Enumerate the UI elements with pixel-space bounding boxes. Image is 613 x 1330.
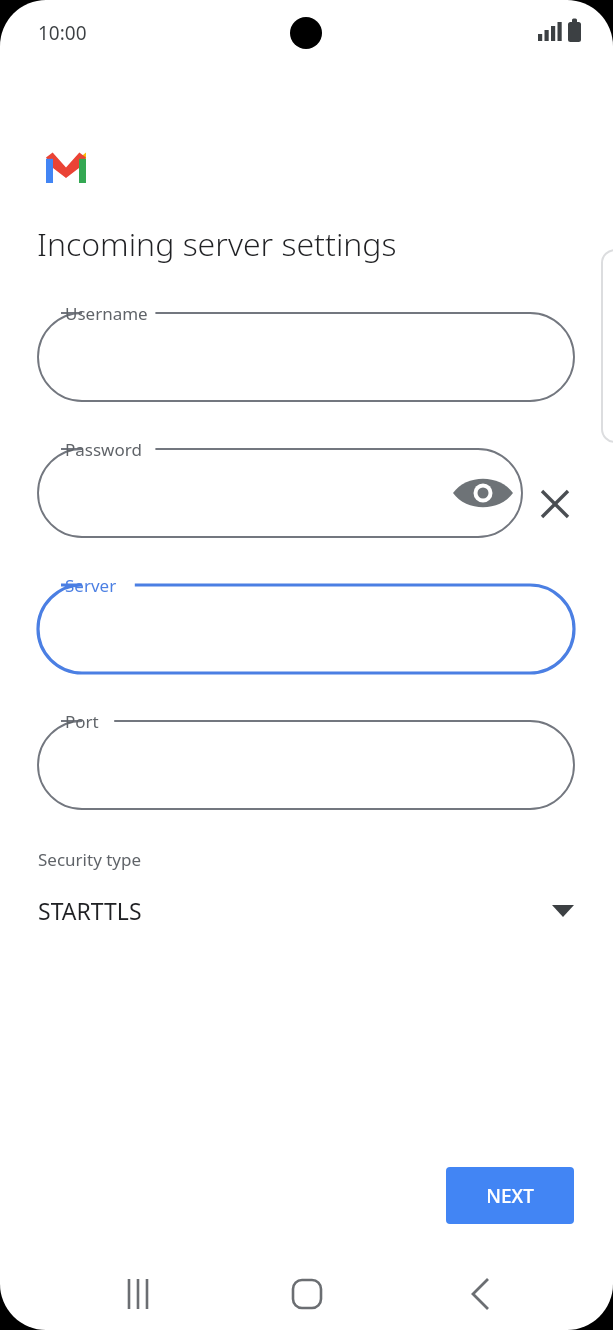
- button[interactable]: Show password: [459, 469, 507, 517]
- button[interactable]: Clear password: [532, 481, 578, 527]
- staticText: Incoming server settings: [37, 222, 397, 266]
- staticText: 10:00: [38, 20, 87, 46]
- button[interactable]: Port: [38, 721, 574, 809]
- staticText: NEXT: [486, 1183, 534, 1209]
- button[interactable]: Home: [281, 1268, 333, 1320]
- staticText: Port: [65, 710, 99, 733]
- staticText: STARTTLS: [38, 895, 142, 926]
- other: Gmail: [46, 152, 86, 183]
- button[interactable]: Recent apps: [112, 1268, 164, 1320]
- button[interactable]: Username: [38, 313, 574, 401]
- button[interactable]: Server: [38, 585, 574, 673]
- staticText: Username: [65, 302, 148, 325]
- button[interactable]: Security type: [38, 848, 574, 926]
- staticText: Server: [65, 574, 117, 597]
- button[interactable]: Back: [455, 1268, 507, 1320]
- button[interactable]: Password: [38, 449, 522, 537]
- button[interactable]: NEXT: [446, 1167, 574, 1224]
- staticText: Security type: [38, 848, 142, 871]
- staticText: Password: [65, 438, 142, 461]
